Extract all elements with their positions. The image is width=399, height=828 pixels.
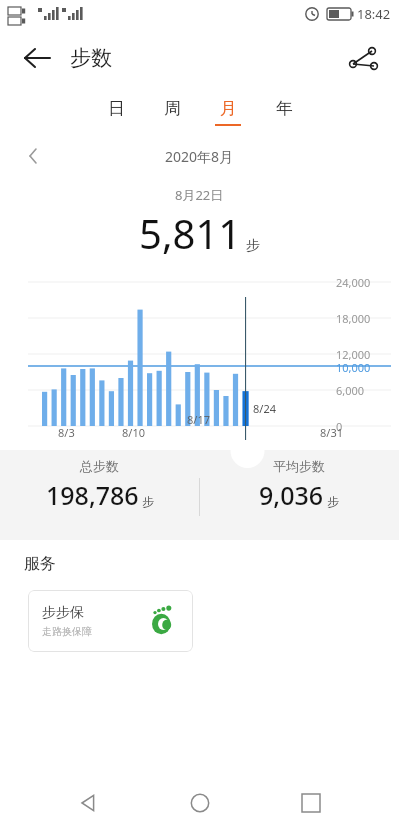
staticText: 6,000 [336,383,396,398]
staticText: 月 [220,98,237,119]
staticText: 9,036 [259,478,324,512]
staticText: 8/31 [320,425,343,440]
staticText: 步 [327,494,339,509]
staticText: 18:42 [357,5,391,23]
button[interactable]: 年 [256,88,312,136]
staticText: 8/17 [187,412,210,427]
staticText: 服务 [24,554,56,574]
staticText: 周 [164,98,181,119]
button[interactable]: Step chart [0,268,399,440]
staticText: 平均步数 [273,458,325,474]
staticText: 年 [276,98,293,119]
staticText: 步 [246,237,260,255]
button[interactable]: Previous month [18,140,50,172]
button[interactable]: Back [64,779,112,827]
staticText: 8/3 [58,425,75,440]
staticText: 步 [142,494,154,509]
staticText: 24,000 [336,275,396,290]
staticText: 198,786 [46,478,139,512]
staticText: 8/24 [253,401,276,416]
staticText: 走路换保障 [42,625,92,638]
button[interactable]: 平均步数 [199,458,399,540]
staticText: 日 [108,98,125,119]
staticText: 总步数 [80,458,119,474]
button[interactable]: 总步数 [0,458,199,540]
staticText: 18,000 [336,311,396,326]
staticText: 步步保 [42,604,84,622]
staticText: 5,811 [139,206,242,260]
button[interactable]: Share [343,38,383,78]
button[interactable]: 步步保 [28,590,193,652]
button[interactable]: Recents [287,779,335,827]
staticText: 步数 [70,45,112,71]
button[interactable]: Home [176,779,224,827]
button[interactable]: Back [20,38,60,78]
button[interactable]: 月 [200,88,256,136]
staticText: 0 [336,419,396,434]
staticText: 8月22日 [175,186,224,204]
staticText: 2020年8月 [165,147,234,166]
button[interactable]: 日 [88,88,144,136]
staticText: 8/10 [122,425,145,440]
button[interactable]: 周 [144,88,200,136]
staticText: 12,000 [336,347,396,362]
staticText: 10,000 [336,360,371,375]
